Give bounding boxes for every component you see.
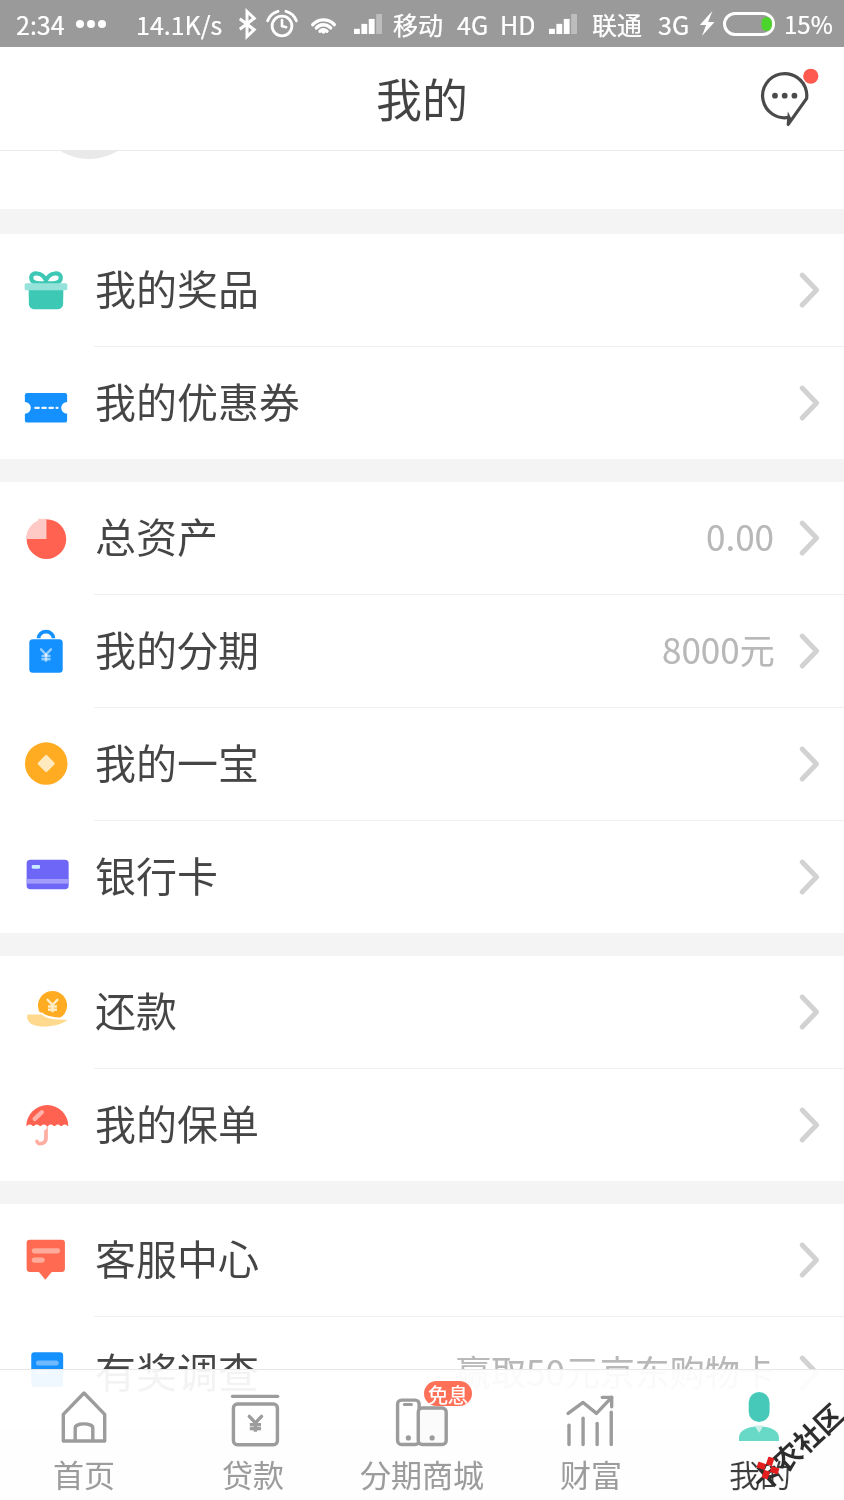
button[interactable]: 财富 xyxy=(506,1369,675,1500)
staticText: 2:34 xyxy=(16,6,65,42)
button[interactable]: 我的保单 xyxy=(0,1069,844,1181)
button[interactable]: 我的 xyxy=(675,1369,844,1500)
staticText: 客服中心 xyxy=(95,1227,259,1286)
button[interactable]: 总资产 xyxy=(0,482,844,594)
staticText: 首页 xyxy=(53,1451,115,1496)
staticText: 我的分期 xyxy=(95,618,259,677)
button[interactable]: Messages xyxy=(752,63,824,135)
button[interactable]: 我的奖品 xyxy=(0,234,844,346)
staticText: 卡农社区 xyxy=(742,1393,844,1500)
staticText: 我的一宝 xyxy=(95,731,259,790)
staticText: 贷款 xyxy=(222,1451,284,1496)
staticText: 还款 xyxy=(95,979,177,1038)
staticText: 总资产 xyxy=(95,505,218,564)
staticText: 银行卡 xyxy=(95,844,218,903)
staticText: HD xyxy=(500,6,536,42)
button[interactable]: 我的一宝 xyxy=(0,708,844,820)
staticText: 我的 xyxy=(376,64,468,131)
button[interactable]: 银行卡 xyxy=(0,821,844,933)
staticText: 我的优惠券 xyxy=(95,370,300,429)
staticText: 15% xyxy=(784,6,833,41)
button[interactable]: 免息 xyxy=(337,1369,506,1500)
staticText: 14.1K/s xyxy=(136,6,223,42)
button[interactable]: 我的优惠券 xyxy=(0,347,844,459)
button[interactable]: 客服中心 xyxy=(0,1204,844,1316)
staticText: 4G xyxy=(457,6,489,42)
button[interactable]: 首页 xyxy=(0,1369,168,1500)
staticText: 移动 xyxy=(393,6,444,42)
staticText: 分期商城 xyxy=(360,1451,484,1496)
button[interactable]: 还款 xyxy=(0,956,844,1068)
staticText: 财富 xyxy=(560,1451,622,1496)
button[interactable]: 贷款 xyxy=(168,1369,337,1500)
staticText: 我的奖品 xyxy=(95,257,259,316)
staticText: 联通 xyxy=(592,6,643,42)
staticText: 赢取50元京东购物卡 xyxy=(456,1345,775,1396)
staticText: 我的 xyxy=(729,1451,791,1496)
staticText: 8000元 xyxy=(662,623,775,674)
staticText: 3G xyxy=(658,6,690,42)
staticText: 0.00 xyxy=(706,510,775,561)
button[interactable]: 有奖调查 xyxy=(0,1317,844,1429)
staticText: 免息 xyxy=(428,1381,468,1405)
staticText: 我的保单 xyxy=(95,1092,259,1151)
staticText: 有奖调查 xyxy=(95,1340,259,1399)
button[interactable]: 我的分期 xyxy=(0,595,844,707)
